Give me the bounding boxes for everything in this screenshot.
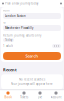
staticText: Return journey, adults only xyxy=(3,34,41,37)
staticText: No recent searches xyxy=(19,78,45,81)
staticText: To xyxy=(3,21,6,24)
button[interactable]: Manchester Piccadilly xyxy=(3,25,61,31)
staticText: Search xyxy=(25,53,38,59)
staticText: Book xyxy=(4,95,11,99)
button[interactable]: Search xyxy=(3,52,61,60)
staticText: Plan a new journey today xyxy=(5,2,38,5)
staticText: Account xyxy=(50,95,61,99)
staticText: Recent xyxy=(3,67,17,72)
button[interactable]: Live xyxy=(32,90,48,100)
staticText: Tickets xyxy=(20,95,28,99)
staticText: Today xyxy=(5,38,12,42)
staticText: Your journeys will appear here xyxy=(11,82,53,86)
staticText: 1 adult xyxy=(3,44,13,48)
button[interactable]: Book xyxy=(0,90,16,100)
staticText: Manchester Piccadilly xyxy=(5,26,33,30)
button[interactable]: Tickets xyxy=(16,90,32,100)
staticText: London Euston xyxy=(5,14,26,18)
button[interactable]: London Euston xyxy=(3,13,61,19)
button[interactable]: Account xyxy=(48,90,64,100)
staticText: Live xyxy=(37,95,42,99)
button[interactable]: More travel options xyxy=(52,44,61,48)
staticText: From xyxy=(3,9,9,12)
